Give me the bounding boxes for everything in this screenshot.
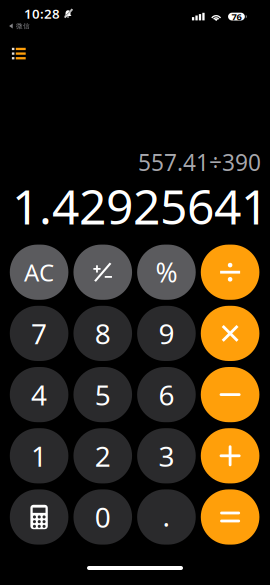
staticText: % (155, 254, 177, 290)
button[interactable]: AC (10, 245, 68, 300)
staticText: 1 (31, 437, 47, 474)
button[interactable]: Plus Minus (73, 245, 132, 300)
staticText: 10:28 (24, 5, 60, 22)
button[interactable]: 4 (10, 367, 68, 422)
button[interactable]: Add (201, 428, 259, 483)
button[interactable]: 6 (137, 367, 196, 422)
button[interactable]: . (137, 489, 196, 545)
button[interactable]: Divide (201, 245, 259, 300)
button[interactable]: 8 (73, 306, 132, 361)
button[interactable]: Equals (201, 489, 259, 545)
staticText: 557.41÷390 (138, 147, 261, 177)
staticText: 76 (231, 10, 241, 23)
staticText: 6 (158, 376, 174, 413)
staticText: 微信 (16, 22, 30, 30)
staticText: 9 (158, 315, 174, 352)
staticText: 5 (95, 376, 111, 413)
staticText: . (162, 497, 170, 535)
button[interactable]: 微信 (6, 19, 33, 33)
button[interactable]: History (5, 41, 33, 66)
button[interactable]: Subtract (201, 367, 259, 422)
button[interactable]: Multiply (201, 306, 259, 361)
staticText: AC (24, 256, 54, 288)
button[interactable]: 0 (73, 489, 132, 545)
staticText: 0 (95, 498, 111, 536)
staticText: 2 (95, 437, 111, 474)
button[interactable]: 2 (73, 428, 132, 483)
button[interactable]: 5 (73, 367, 132, 422)
staticText: 8 (95, 315, 111, 352)
staticText: 1.42925641 (12, 174, 268, 238)
button[interactable]: % (137, 245, 196, 300)
staticText: 4 (31, 376, 47, 413)
button[interactable]: 1 (10, 428, 68, 483)
button[interactable]: 9 (137, 306, 196, 361)
staticText: 7 (31, 315, 47, 352)
button[interactable]: 3 (137, 428, 196, 483)
staticText: 3 (158, 437, 174, 474)
button[interactable]: 7 (10, 306, 68, 361)
button[interactable]: Calculator mode (10, 489, 68, 545)
